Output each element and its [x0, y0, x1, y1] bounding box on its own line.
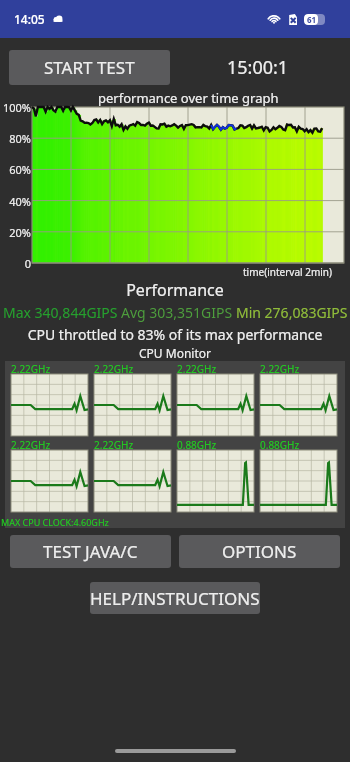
- staticText: HELP/INSTRUCTIONS: [90, 587, 260, 610]
- button[interactable]: OPTIONS: [179, 535, 340, 568]
- staticText: 15:00:1: [227, 55, 289, 80]
- staticText: 2.22GHz: [177, 362, 217, 376]
- staticText: 0: [0, 256, 31, 271]
- staticText: 40%: [0, 194, 31, 209]
- staticText: Avg 303,351GIPS: [121, 303, 233, 322]
- button[interactable]: HELP/INSTRUCTIONS: [90, 582, 260, 614]
- staticText: 0.88GHz: [260, 438, 300, 452]
- staticText: 60%: [0, 162, 31, 177]
- staticText: Max 340,844GIPS: [3, 303, 118, 322]
- button[interactable]: START TEST: [9, 50, 170, 85]
- staticText: 2.22GHz: [94, 438, 134, 452]
- staticText: 0.88GHz: [177, 438, 217, 452]
- staticText: CPU throttled to 83% of its max performa…: [0, 325, 350, 344]
- staticText: CPU Monitor: [0, 345, 350, 361]
- staticText: 2.22GHz: [94, 362, 134, 376]
- staticText: 2.22GHz: [11, 362, 51, 376]
- staticText: Min 276,083GIPS: [236, 303, 348, 322]
- staticText: 20%: [0, 225, 31, 240]
- staticText: 80%: [0, 131, 31, 146]
- button[interactable]: TEST JAVA/C: [10, 535, 171, 568]
- staticText: 2.22GHz: [11, 438, 51, 452]
- staticText: MAX CPU CLOCK:4.60GHz: [1, 516, 109, 528]
- staticText: 100%: [0, 100, 31, 115]
- staticText: START TEST: [44, 56, 135, 79]
- staticText: 2.22GHz: [260, 362, 300, 376]
- staticText: 61: [307, 14, 317, 25]
- staticText: 14:05: [14, 11, 45, 27]
- staticText: TEST JAVA/C: [43, 540, 138, 563]
- staticText: Performance: [0, 279, 350, 301]
- staticText: time(interval 2min): [243, 265, 333, 279]
- staticText: performance over time graph: [98, 89, 279, 107]
- staticText: OPTIONS: [222, 540, 297, 563]
